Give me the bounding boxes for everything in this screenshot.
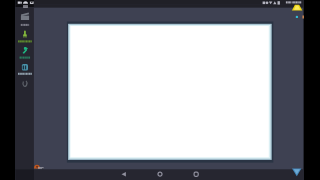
button[interactable]: Back bbox=[108, 169, 139, 180]
button[interactable]: Screen recorder bbox=[15, 10, 34, 26]
button[interactable]: Reading app bbox=[15, 61, 34, 77]
button[interactable]: Running app bbox=[15, 44, 34, 60]
button[interactable]: Back bbox=[15, 78, 34, 89]
button[interactable]: Hiking app bbox=[15, 28, 34, 44]
button[interactable]: Quick panel bbox=[15, 4, 34, 10]
button[interactable]: Home bbox=[144, 169, 175, 180]
button[interactable]: Recent apps bbox=[180, 169, 211, 180]
